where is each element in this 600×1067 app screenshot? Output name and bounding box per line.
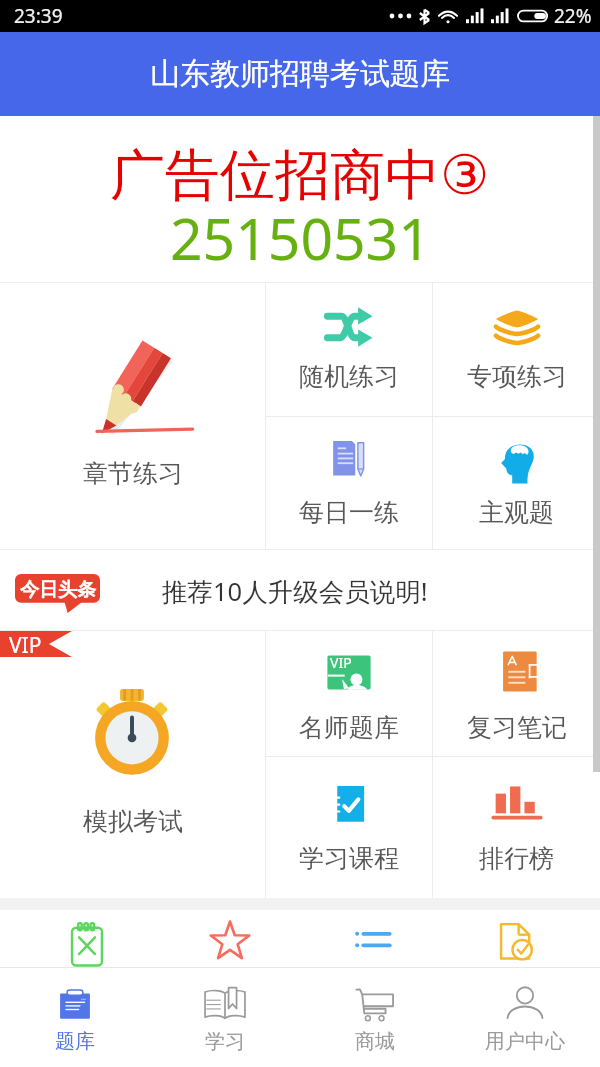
button[interactable]: Favorites [158,910,301,966]
staticText: VIP [9,631,42,657]
button[interactable]: Records [301,910,444,966]
button[interactable]: 排行榜 [433,757,600,898]
button[interactable]: 随机练习 [266,283,432,416]
staticText: 主观题 [479,497,554,528]
staticText: 复习笔记 [467,712,567,743]
button[interactable]: 学习课程 [266,757,432,898]
button[interactable]: 题库 [0,968,150,1067]
staticText: 题库 [55,1029,95,1054]
button[interactable]: 今日头条 [0,550,600,630]
button[interactable]: 商城 [300,968,450,1067]
button[interactable]: 模拟考试 [0,631,265,898]
staticText: 山东教师招聘考试题库 [150,55,450,93]
staticText: 22% [554,3,592,29]
button[interactable]: 专项练习 [433,283,600,416]
staticText: 模拟考试 [83,806,183,837]
button[interactable]: Wrong questions [16,910,158,966]
staticText: 广告位招商中③ [110,141,490,210]
button[interactable]: VIP [266,631,432,756]
staticText: 章节练习 [83,458,183,489]
staticText: 专项练习 [467,361,567,392]
staticText: 用户中心 [485,1029,565,1054]
staticText: 今日头条 [20,578,96,602]
staticText: 推荐10人升级会员说明! [162,574,428,609]
staticText: 学习 [205,1029,245,1054]
staticText: 23:39 [14,3,63,29]
button[interactable]: 学习 [150,968,300,1067]
button[interactable]: Papers [444,910,587,966]
staticText: 学习课程 [299,843,399,874]
button[interactable]: 每日一练 [266,417,432,549]
staticText: 排行榜 [479,843,554,874]
button[interactable]: 主观题 [433,417,600,549]
staticText: 每日一练 [299,497,399,528]
button[interactable]: 用户中心 [450,968,600,1067]
staticText: VIP [330,653,352,672]
button[interactable]: 章节练习 [0,283,265,549]
staticText: 随机练习 [299,361,399,392]
staticText: 名师题库 [299,712,399,743]
staticText: 商城 [355,1029,395,1054]
button[interactable]: 复习笔记 [433,631,600,756]
staticText: 25150531 [170,199,431,271]
